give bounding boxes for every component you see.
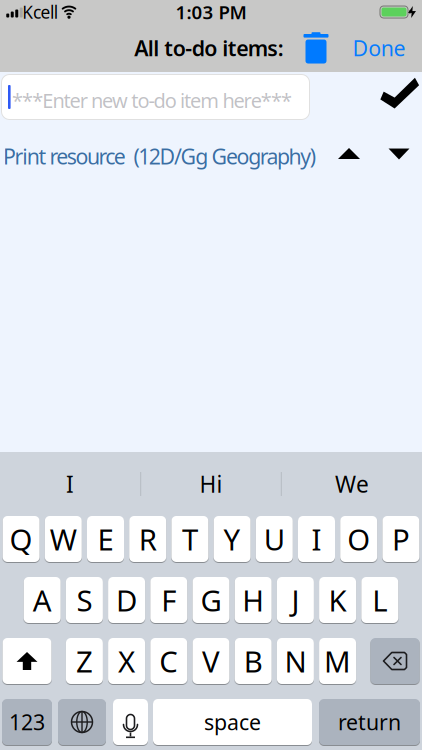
staticText: R xyxy=(139,519,157,558)
button[interactable]: Y xyxy=(214,516,251,562)
button[interactable]: G xyxy=(192,577,229,623)
button[interactable]: Add item xyxy=(382,81,417,108)
staticText: H xyxy=(242,580,264,619)
button[interactable]: Dictate xyxy=(113,699,148,745)
button[interactable]: Delete xyxy=(370,638,419,684)
staticText: Done xyxy=(352,34,405,62)
button[interactable]: A xyxy=(24,577,61,623)
button[interactable]: space xyxy=(153,699,312,745)
staticText: Z xyxy=(76,641,93,680)
button[interactable]: Hi xyxy=(141,462,280,506)
button[interactable]: B xyxy=(235,638,272,684)
button[interactable]: Enter new to-do item xyxy=(1,74,310,120)
button[interactable]: Next keyboard xyxy=(58,699,106,745)
button[interactable]: P xyxy=(382,516,419,562)
staticText: P xyxy=(392,519,410,558)
button[interactable]: I xyxy=(298,516,335,562)
button[interactable]: K xyxy=(319,577,356,623)
button[interactable]: E xyxy=(87,516,124,562)
staticText: V xyxy=(202,641,220,680)
staticText: S xyxy=(76,580,92,619)
staticText: C xyxy=(159,641,178,680)
button[interactable]: O xyxy=(340,516,377,562)
button[interactable]: S xyxy=(66,577,103,623)
staticText: L xyxy=(372,580,387,619)
button[interactable]: R xyxy=(129,516,166,562)
button[interactable]: C xyxy=(150,638,187,684)
staticText: return xyxy=(338,708,401,736)
staticText: F xyxy=(161,580,176,619)
staticText: I xyxy=(311,519,321,558)
staticText: T xyxy=(182,519,198,558)
button[interactable]: Move up xyxy=(338,148,360,159)
staticText: Hi xyxy=(199,469,222,499)
button[interactable]: N xyxy=(277,638,314,684)
button[interactable]: X xyxy=(108,638,145,684)
staticText: W xyxy=(50,519,77,558)
staticText: Y xyxy=(224,519,241,558)
button[interactable]: Move down xyxy=(388,148,409,159)
staticText: M xyxy=(324,641,351,680)
button[interactable]: I xyxy=(0,462,139,506)
staticText: U xyxy=(264,519,285,558)
staticText: We xyxy=(335,469,369,499)
staticText: K xyxy=(329,580,347,619)
button[interactable]: 123 xyxy=(2,699,52,745)
staticText: E xyxy=(97,519,113,558)
staticText: A xyxy=(33,580,52,619)
staticText: Q xyxy=(10,519,33,558)
staticText: G xyxy=(200,580,221,619)
staticText: I xyxy=(66,469,74,499)
button[interactable]: F xyxy=(150,577,187,623)
button[interactable]: D xyxy=(108,577,145,623)
button[interactable]: We xyxy=(282,462,421,506)
button[interactable]: Print resource (12D/Gg Geography) xyxy=(3,142,316,170)
button[interactable]: Shift xyxy=(2,638,51,684)
staticText: 123 xyxy=(9,708,45,736)
staticText: J xyxy=(291,580,299,619)
staticText: 1:03 PM xyxy=(175,0,246,24)
staticText: All to-do items: xyxy=(134,34,284,62)
staticText: D xyxy=(116,580,137,619)
staticText: O xyxy=(347,519,370,558)
button[interactable]: T xyxy=(171,516,208,562)
button[interactable]: H xyxy=(235,577,272,623)
button[interactable]: J xyxy=(277,577,314,623)
button[interactable]: Z xyxy=(66,638,103,684)
staticText: Kcell xyxy=(22,0,58,23)
staticText: X xyxy=(118,641,135,680)
button[interactable]: U xyxy=(256,516,293,562)
staticText: space xyxy=(204,708,261,736)
button[interactable]: L xyxy=(361,577,398,623)
staticText: N xyxy=(284,641,306,680)
button[interactable]: Delete xyxy=(303,32,328,63)
button[interactable]: Q xyxy=(3,516,40,562)
button[interactable]: Done xyxy=(352,34,405,62)
staticText: Print resource (12D/Gg Geography) xyxy=(3,142,316,170)
button[interactable]: V xyxy=(192,638,229,684)
button[interactable]: return xyxy=(319,699,420,745)
button[interactable]: M xyxy=(319,638,356,684)
button[interactable]: W xyxy=(45,516,82,562)
staticText: ***Enter new to-do item here*** xyxy=(12,87,292,114)
staticText: B xyxy=(244,641,263,680)
